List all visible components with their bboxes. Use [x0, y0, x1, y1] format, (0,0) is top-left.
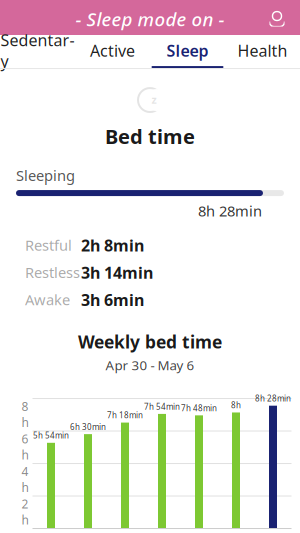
staticText: Weekly bed time: [78, 330, 222, 353]
staticText: 7h 48min: [181, 403, 217, 413]
staticText: Sleeping: [16, 166, 75, 185]
staticText: Health: [237, 40, 287, 61]
staticText: 6h 30min: [70, 421, 106, 432]
staticText: 2h 8min: [81, 235, 144, 256]
staticText: 3h 6min: [81, 289, 144, 310]
staticText: 8h: [231, 400, 241, 410]
staticText: Bed time: [105, 123, 195, 150]
staticText: 7h 18min: [107, 410, 143, 421]
button[interactable]: Sleep: [150, 35, 225, 68]
staticText: 8h 28min: [255, 393, 291, 404]
staticText: Sedentary: [0, 29, 74, 72]
staticText: Restful: [25, 235, 72, 255]
staticText: Restless: [25, 263, 80, 282]
staticText: 8h 28min: [198, 201, 262, 221]
staticText: Apr 30 - May 6: [105, 356, 194, 374]
staticText: 5h 54min: [33, 430, 69, 441]
staticText: 4h: [21, 463, 28, 495]
staticText: 6h: [21, 431, 28, 463]
staticText: 8h: [21, 398, 28, 430]
staticText: Active: [90, 40, 135, 61]
staticText: 3h 14min: [81, 262, 153, 283]
staticText: 7h 54min: [144, 401, 180, 412]
staticText: Awake: [25, 290, 70, 309]
staticText: Sleep: [166, 40, 208, 61]
staticText: - Sleep mode on -: [75, 7, 224, 31]
button[interactable]: Profile: [260, 2, 294, 36]
button[interactable]: Sedentary: [0, 35, 75, 68]
button[interactable]: Health: [225, 35, 300, 68]
button[interactable]: Active: [75, 35, 150, 68]
staticText: z: [151, 92, 156, 107]
staticText: 2h: [21, 496, 28, 528]
